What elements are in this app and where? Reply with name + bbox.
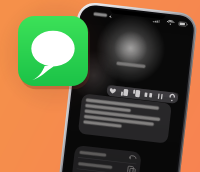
button[interactable]: iMessage article banner — [0, 0, 200, 172]
